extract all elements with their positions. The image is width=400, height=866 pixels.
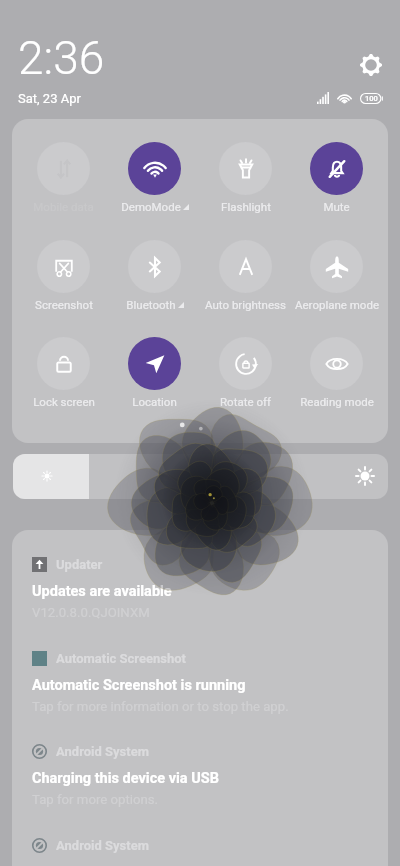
staticText: Android System — [56, 838, 149, 853]
staticText: DemoMode — [121, 200, 181, 213]
button[interactable]: Android System — [32, 744, 372, 807]
staticText: Mute — [323, 200, 350, 213]
button[interactable]: Automatic Screenshot — [32, 651, 372, 714]
staticText: Flashlight — [221, 200, 271, 213]
button[interactable]: Brightness — [13, 454, 388, 499]
staticText: Rotate off — [220, 395, 271, 408]
staticText: Automatic Screenshot — [56, 651, 187, 666]
staticText: Android System — [56, 744, 149, 759]
button[interactable]: Aeroplane mode — [291, 240, 382, 312]
staticText: Screenshot — [35, 298, 93, 311]
button[interactable]: Updater — [32, 557, 372, 620]
staticText: Location — [132, 395, 177, 408]
staticText: Auto brightness — [205, 298, 286, 311]
button[interactable]: Screenshot — [18, 240, 109, 312]
button[interactable]: Reading mode — [291, 337, 382, 409]
staticText: Sat, 23 Apr — [18, 91, 81, 106]
staticText: Tap for more options. — [32, 792, 159, 807]
staticText: Bluetooth — [126, 298, 176, 311]
button[interactable]: Settings — [355, 49, 387, 81]
staticText: Updates are available — [32, 583, 172, 600]
button[interactable]: Lock screen — [18, 337, 109, 409]
staticText: Automatic Screenshot is running — [32, 677, 246, 694]
button[interactable]: Android System — [32, 838, 372, 853]
button[interactable]: Mute — [291, 142, 382, 214]
button[interactable]: Flashlight — [200, 142, 291, 214]
staticText: V12.0.8.0.QJOINXM — [32, 605, 150, 620]
button[interactable]: Mobile data — [18, 142, 109, 214]
staticText: Charging this device via USB — [32, 770, 219, 787]
staticText: Updater — [56, 557, 103, 572]
button[interactable]: Rotate off — [200, 337, 291, 409]
button[interactable]: Location — [109, 337, 200, 409]
button[interactable]: DemoMode — [109, 142, 200, 214]
staticText: Lock screen — [33, 395, 95, 408]
staticText: 2:36 — [18, 31, 105, 85]
button[interactable]: Auto brightness — [200, 240, 291, 312]
staticText: 100 — [365, 94, 378, 103]
staticText: Tap for more information or to stop the … — [32, 699, 289, 714]
staticText: Aeroplane mode — [295, 298, 379, 311]
staticText: Reading mode — [300, 395, 374, 408]
button[interactable]: Bluetooth — [109, 240, 200, 312]
